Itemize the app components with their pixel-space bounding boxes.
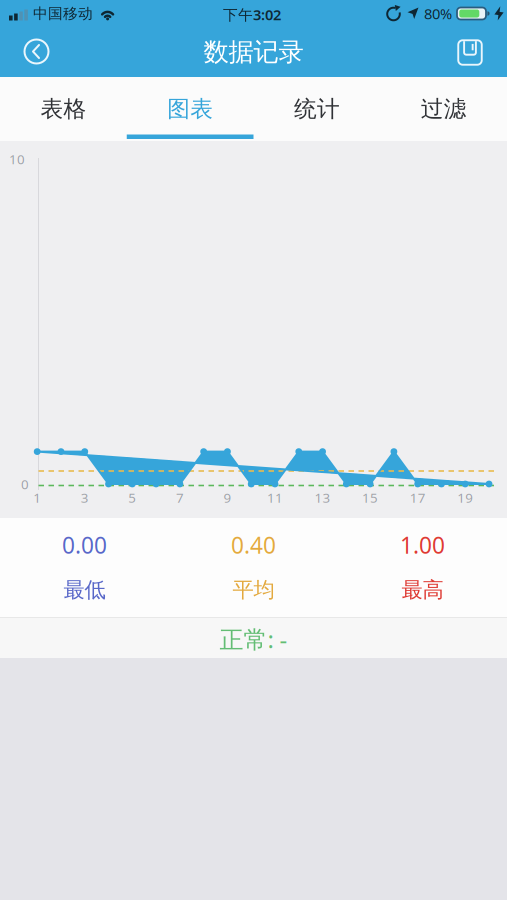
button[interactable]: 统计 bbox=[253, 77, 380, 141]
staticText: 1.00 bbox=[400, 530, 445, 560]
staticText: 19 bbox=[457, 489, 473, 506]
staticText: 15 bbox=[362, 489, 378, 506]
staticText: 5 bbox=[128, 489, 136, 506]
staticText: 10 bbox=[9, 150, 25, 168]
staticText: 1 bbox=[33, 489, 41, 506]
staticText: 过滤 bbox=[421, 95, 467, 123]
button[interactable]: Save bbox=[457, 40, 482, 65]
staticText: 最低 bbox=[63, 577, 105, 603]
staticText: 0 bbox=[21, 475, 29, 493]
staticText: 数据记录 bbox=[203, 36, 303, 67]
staticText: 图表 bbox=[167, 95, 213, 123]
staticText: 平均 bbox=[232, 577, 274, 603]
button[interactable]: 表格 bbox=[0, 77, 127, 141]
staticText: 11 bbox=[267, 489, 283, 506]
staticText: 9 bbox=[223, 489, 231, 506]
staticText: 表格 bbox=[40, 95, 86, 123]
staticText: 7 bbox=[176, 489, 184, 506]
staticText: 统计 bbox=[294, 95, 340, 123]
staticText: 17 bbox=[410, 489, 426, 506]
button[interactable]: 过滤 bbox=[380, 77, 507, 141]
staticText: 0.00 bbox=[62, 530, 107, 560]
staticText: 正常: - bbox=[219, 623, 287, 655]
staticText: 3 bbox=[81, 489, 89, 506]
button[interactable]: 图表 bbox=[127, 77, 254, 141]
staticText: 中国移动 bbox=[33, 4, 93, 22]
staticText: 80% bbox=[424, 4, 452, 23]
staticText: 最高 bbox=[401, 577, 443, 603]
staticText: 13 bbox=[315, 489, 331, 506]
staticText: 下午3:02 bbox=[223, 5, 281, 24]
button[interactable]: Back bbox=[22, 37, 50, 65]
staticText: 0.40 bbox=[231, 530, 276, 560]
